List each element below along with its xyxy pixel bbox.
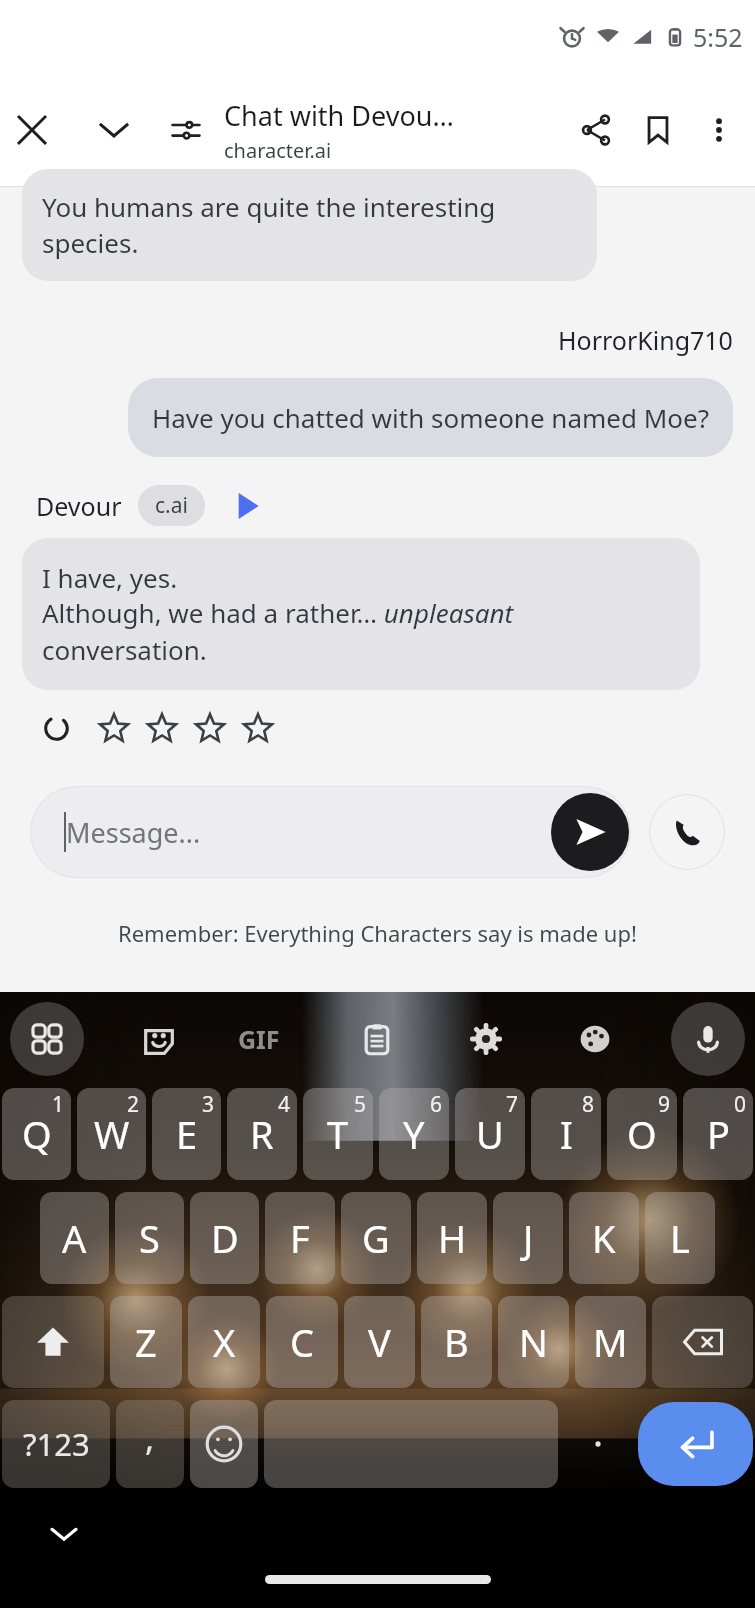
button[interactable]: U	[455, 1088, 525, 1180]
staticText: J	[523, 1212, 534, 1264]
staticText: R	[250, 1108, 274, 1160]
button[interactable]: GIF	[235, 1006, 301, 1072]
staticText: character.ai	[224, 137, 332, 164]
staticText: Although, we had a rather… unpleasant co…	[42, 595, 680, 668]
staticText: 2	[127, 1090, 140, 1119]
staticText: U	[476, 1108, 504, 1160]
staticText: B	[444, 1316, 469, 1368]
button[interactable]: B	[421, 1296, 492, 1388]
staticText: ,	[145, 1415, 155, 1461]
staticText: F	[290, 1212, 310, 1264]
staticText: Have you chatted with someone named Moe?	[152, 400, 709, 435]
button[interactable]: M	[575, 1296, 646, 1388]
button[interactable]: T	[303, 1088, 373, 1180]
button[interactable]: Message...	[30, 786, 631, 878]
staticText: Q	[22, 1108, 52, 1160]
button[interactable]: I	[531, 1088, 601, 1180]
staticText: G	[362, 1212, 390, 1264]
staticText: A	[62, 1212, 87, 1264]
button[interactable]: W	[77, 1088, 146, 1180]
button[interactable]: Voice input	[671, 1002, 745, 1076]
staticText: GIF	[238, 1022, 280, 1056]
button[interactable]: Rate star	[234, 704, 282, 752]
button[interactable]: L	[645, 1192, 715, 1284]
button[interactable]: Rate star	[90, 704, 138, 752]
staticText: Devour	[36, 489, 122, 523]
button[interactable]: Enter	[638, 1402, 753, 1486]
button[interactable]	[564, 1400, 632, 1488]
button[interactable]: F	[265, 1192, 335, 1284]
staticText: Chat with Devou…	[224, 97, 454, 134]
button[interactable]: R	[227, 1088, 297, 1180]
staticText: 5	[354, 1090, 367, 1119]
button[interactable]: Rate star	[138, 704, 186, 752]
button[interactable]: C	[266, 1296, 338, 1388]
staticText: Remember: Everything Characters say is m…	[118, 918, 637, 948]
staticText: D	[211, 1212, 239, 1264]
button[interactable]: Q	[2, 1088, 71, 1180]
button[interactable]: Regenerate	[34, 706, 78, 750]
staticText: P	[707, 1108, 730, 1160]
button[interactable]: Call	[649, 794, 725, 870]
button[interactable]: V	[344, 1296, 415, 1388]
staticText: I have, yes.	[42, 560, 178, 595]
button[interactable]: Z	[110, 1296, 182, 1388]
button[interactable]: N	[498, 1296, 569, 1388]
button[interactable]: Close	[0, 98, 64, 162]
staticText: X	[213, 1316, 236, 1368]
button[interactable]: Share	[565, 99, 627, 161]
staticText: 4	[278, 1090, 291, 1119]
button[interactable]: Have you chatted with someone named Moe?	[128, 378, 733, 457]
button[interactable]: D	[190, 1192, 259, 1284]
button[interactable]: Y	[379, 1088, 449, 1180]
button[interactable]: Emoji	[190, 1400, 258, 1488]
button[interactable]: H	[417, 1192, 487, 1284]
staticText: S	[139, 1212, 160, 1264]
staticText: 8	[582, 1090, 595, 1119]
staticText: Message...	[66, 814, 201, 851]
button[interactable]: P	[683, 1088, 753, 1180]
staticText: W	[94, 1108, 130, 1160]
button[interactable]: Stickers	[126, 1006, 192, 1072]
button[interactable]: c.ai	[138, 485, 205, 526]
button[interactable]: Space	[264, 1400, 558, 1488]
button[interactable]: Clipboard	[344, 1006, 410, 1072]
staticText: H	[438, 1212, 467, 1264]
button[interactable]: Hide keyboard	[42, 1512, 86, 1556]
button[interactable]: Play message	[227, 486, 267, 526]
button[interactable]: Home	[265, 1575, 491, 1584]
button[interactable]: O	[607, 1088, 677, 1180]
staticText: ?123	[23, 1423, 90, 1465]
button[interactable]: K	[569, 1192, 639, 1284]
button[interactable]: Page info	[160, 104, 212, 156]
button[interactable]: A	[40, 1192, 109, 1284]
button[interactable]: Rate star	[186, 704, 234, 752]
staticText: C	[290, 1316, 315, 1368]
button[interactable]: Send	[551, 793, 629, 871]
staticText: 7	[506, 1090, 519, 1119]
button[interactable]: Shift	[2, 1296, 104, 1388]
staticText: O	[627, 1108, 657, 1160]
button[interactable]: I have, yes.	[22, 538, 700, 690]
button[interactable]: Themes	[562, 1006, 628, 1072]
staticText: K	[592, 1212, 616, 1264]
staticText: M	[593, 1316, 628, 1368]
button[interactable]: S	[115, 1192, 184, 1284]
button[interactable]: More options	[689, 100, 749, 160]
staticText: 3	[202, 1090, 215, 1119]
button[interactable]: ?123	[2, 1400, 110, 1488]
button[interactable]: Backspace	[652, 1296, 753, 1388]
button[interactable]: You humans are quite the interesting spe…	[22, 169, 597, 281]
staticText: T	[327, 1108, 349, 1160]
staticText: 0	[734, 1090, 747, 1119]
button[interactable]: Bookmark	[627, 99, 689, 161]
button[interactable]: Settings	[453, 1006, 519, 1072]
button[interactable]: X	[188, 1296, 260, 1388]
button[interactable]: G	[341, 1192, 411, 1284]
staticText: Z	[135, 1316, 157, 1368]
button[interactable]: ,	[116, 1400, 184, 1488]
button[interactable]: E	[152, 1088, 221, 1180]
button[interactable]: J	[493, 1192, 563, 1284]
button[interactable]: Keyboard switcher	[10, 1002, 84, 1076]
button[interactable]: Expand	[86, 102, 142, 158]
